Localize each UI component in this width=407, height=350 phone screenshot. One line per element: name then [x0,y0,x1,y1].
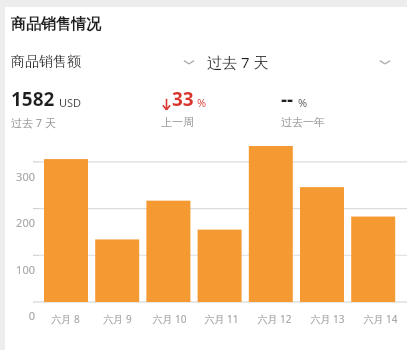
staticText: 六月 8 [51,312,80,326]
staticText: 六月 11 [204,312,239,326]
staticText: -- [281,86,294,112]
staticText: 过去 7 天 [207,52,269,72]
staticText: 1582 [11,86,55,112]
staticText: 六月 10 [152,312,187,326]
staticText: 200 [16,215,35,230]
staticText: 六月 13 [310,312,345,326]
staticText: 商品销售情况 [11,15,101,34]
staticText: % [298,95,308,110]
staticText: 过去 7 天 [11,115,57,130]
staticText: 33 [172,86,194,112]
staticText: 商品销售额 [11,53,81,71]
staticText: 六月 12 [257,312,292,326]
button[interactable]: 过去 7 天 [207,48,403,76]
staticText: 上一周 [161,115,194,129]
staticText: % [197,95,207,110]
staticText: 300 [16,169,35,184]
staticText: USD [59,95,82,110]
staticText: 100 [16,262,35,277]
staticText: 0 [28,308,35,323]
button[interactable]: 商品销售额 [11,49,207,75]
staticText: 六月 9 [103,312,132,326]
staticText: 六月 14 [363,312,398,326]
other: Expand [377,56,393,68]
other: Expand [181,56,197,68]
staticText: 过去一年 [281,115,325,129]
